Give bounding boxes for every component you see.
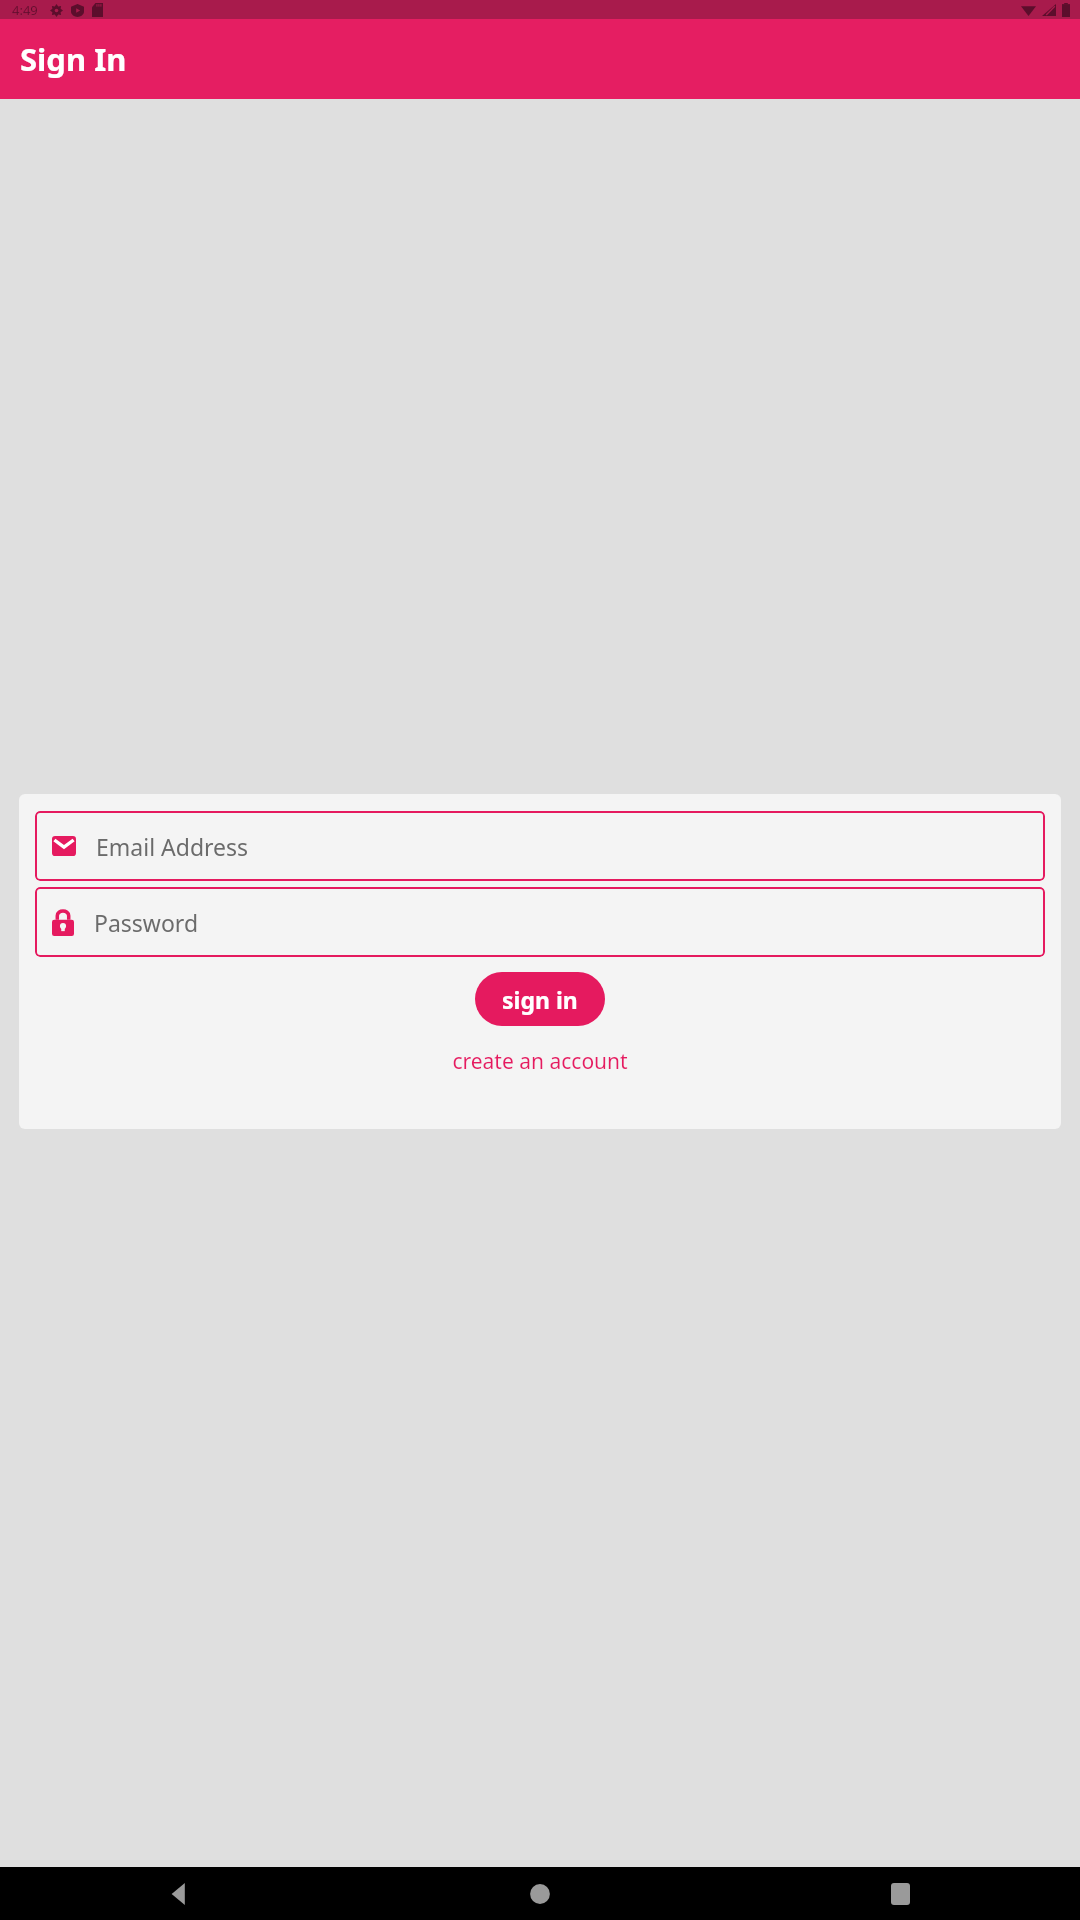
other: Password xyxy=(52,909,74,936)
button[interactable]: Email xyxy=(35,811,1045,881)
button[interactable]: sign in xyxy=(475,972,605,1026)
button[interactable]: Password xyxy=(35,887,1045,957)
button[interactable]: Recents xyxy=(876,1870,924,1918)
staticText: create an account xyxy=(452,1047,628,1076)
button[interactable]: Back xyxy=(156,1870,204,1918)
staticText: Sign In xyxy=(20,38,127,80)
staticText: Password xyxy=(94,907,199,938)
other: Email xyxy=(52,836,76,856)
staticText: 4:49 xyxy=(12,1,38,19)
button[interactable]: create an account xyxy=(444,1043,636,1080)
staticText: sign in xyxy=(502,984,578,1015)
staticText: Email Address xyxy=(96,831,249,862)
button[interactable]: Home xyxy=(516,1870,564,1918)
